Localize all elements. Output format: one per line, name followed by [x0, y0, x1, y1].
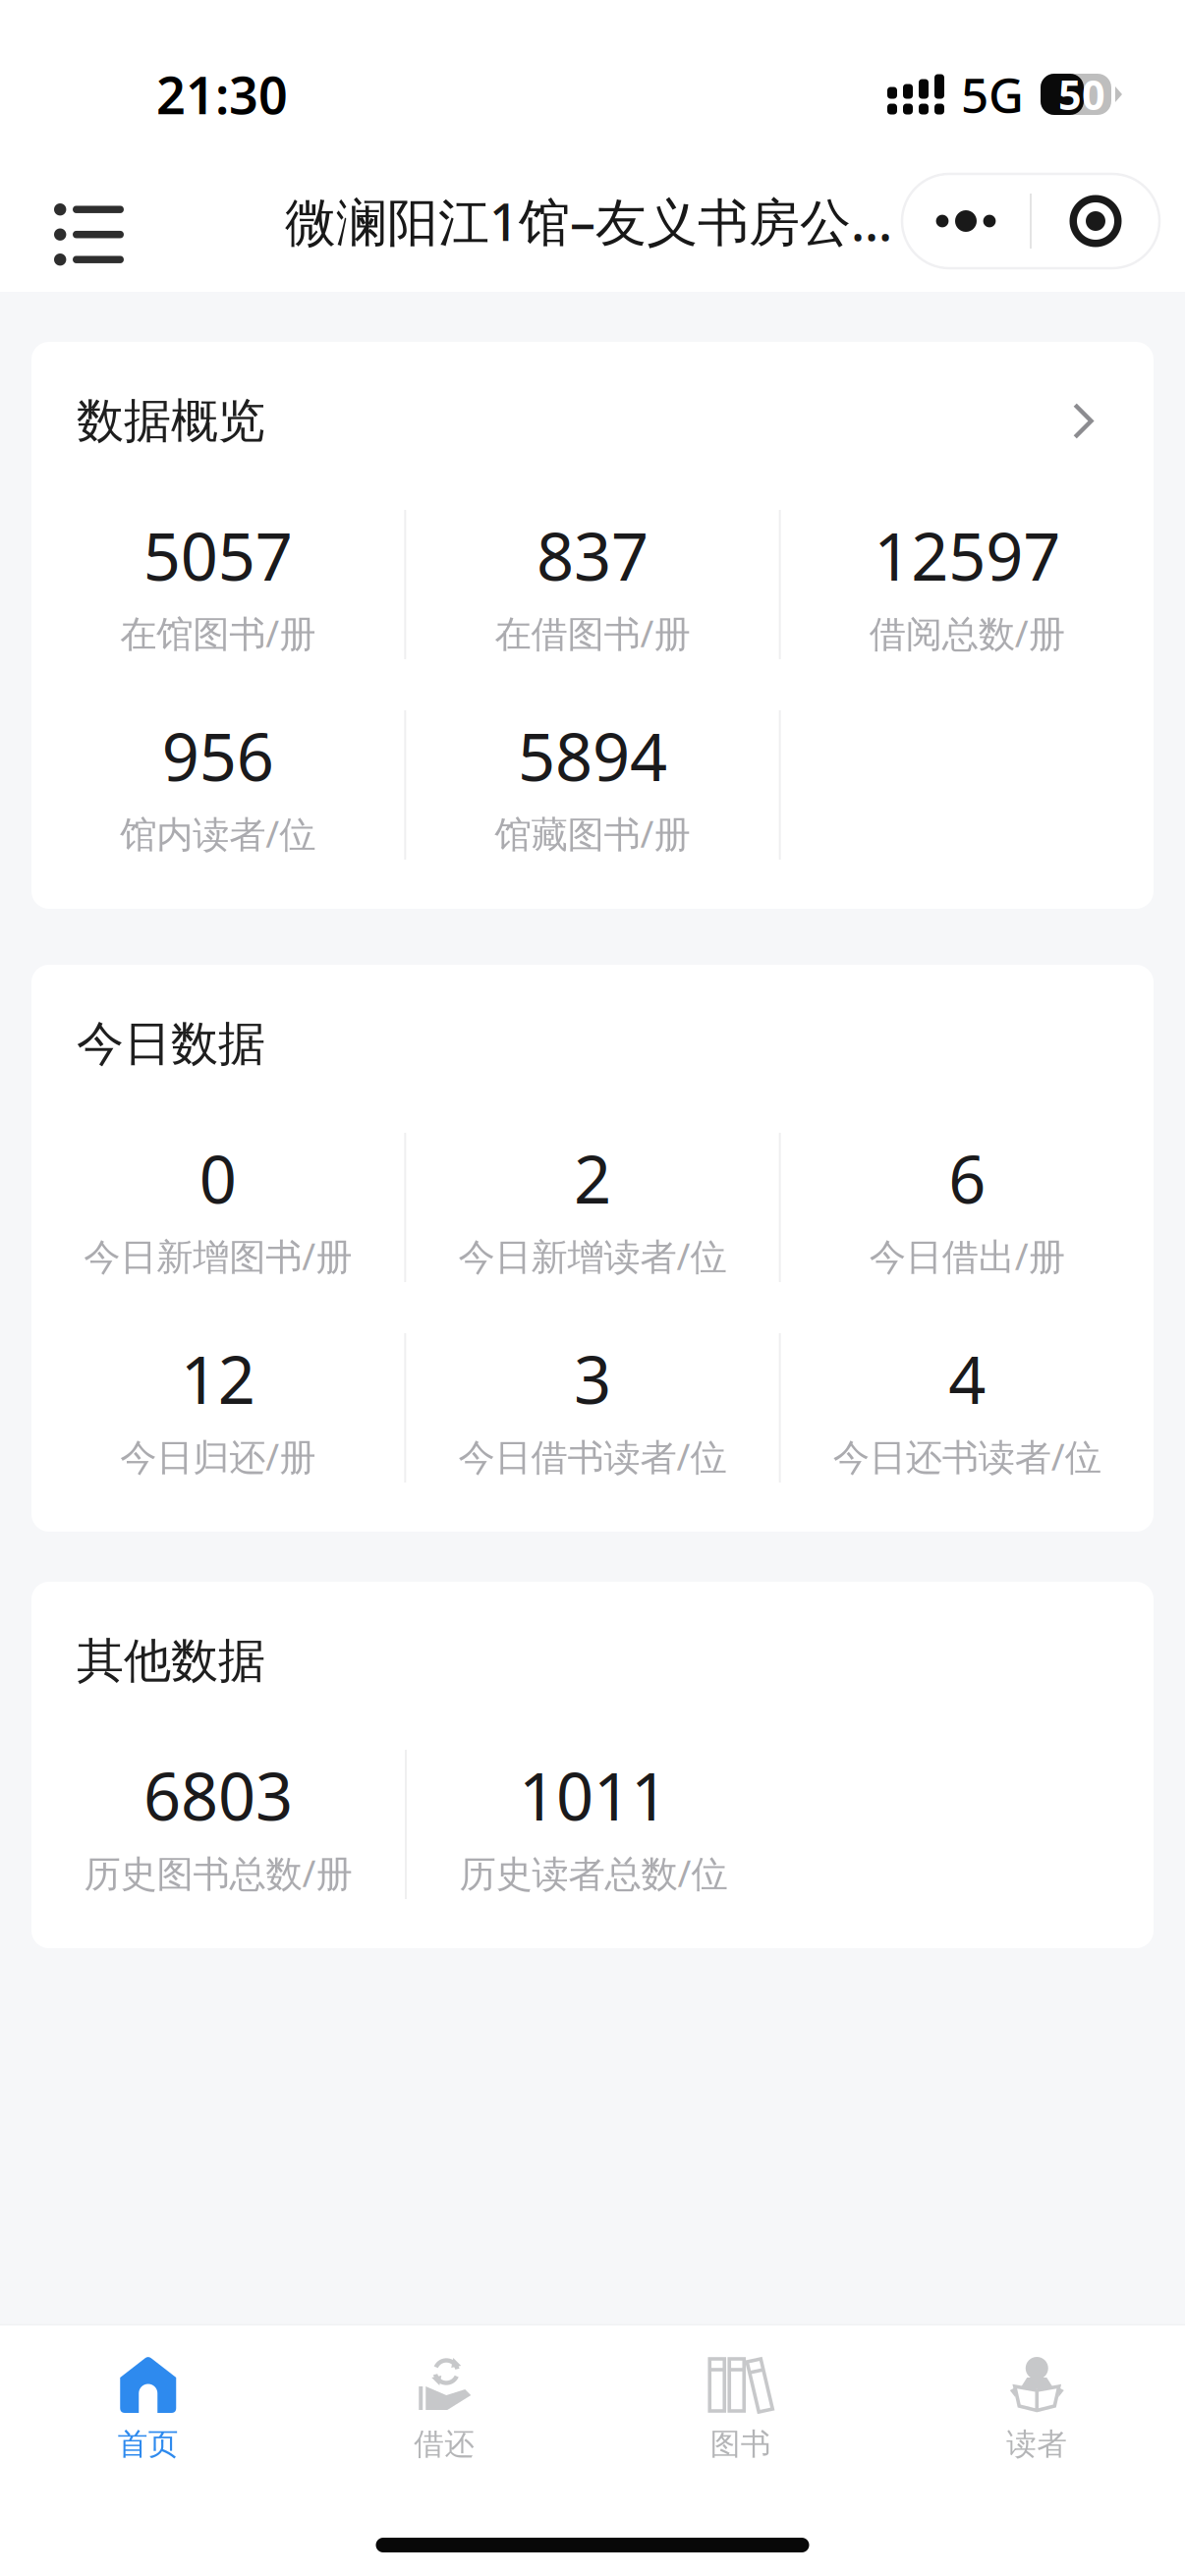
staticText: 借还 [414, 2426, 475, 2463]
staticText: 微澜阳江1馆–友义书房公... [285, 187, 892, 255]
staticText: 956 [162, 712, 274, 799]
staticText: 6 [948, 1135, 986, 1222]
staticText: 馆藏图书/册 [495, 809, 690, 858]
staticText: 今日借出/册 [869, 1232, 1065, 1280]
staticText: 5G [961, 62, 1024, 126]
staticText: 历史图书总数/册 [84, 1848, 352, 1897]
staticText: 借阅总数/册 [869, 609, 1065, 657]
button[interactable]: More options [902, 174, 1030, 268]
button[interactable]: 图书 [592, 2325, 889, 2478]
staticText: 3 [574, 1335, 611, 1422]
button[interactable]: 借还 [296, 2325, 592, 2478]
staticText: 今日新增图书/册 [84, 1232, 352, 1280]
staticText: 馆内读者/位 [120, 809, 316, 858]
button[interactable]: 首页 [0, 2325, 296, 2478]
staticText: 2 [574, 1135, 611, 1222]
staticText: 今日还书读者/位 [833, 1432, 1101, 1481]
staticText: 5894 [518, 712, 667, 799]
button[interactable]: Menu [0, 150, 182, 292]
staticText: 读者 [1006, 2426, 1067, 2463]
staticText: 今日新增读者/位 [458, 1232, 727, 1280]
staticText: 1011 [519, 1752, 668, 1839]
button[interactable]: 读者 [889, 2325, 1185, 2478]
staticText: 50 [1058, 67, 1105, 121]
staticText: 4 [948, 1335, 986, 1422]
staticText: 历史读者总数/位 [459, 1848, 728, 1897]
staticText: 在馆图书/册 [120, 609, 316, 657]
staticText: 5057 [143, 512, 293, 599]
staticText: 数据概览 [77, 392, 265, 450]
staticText: 今日归还/册 [120, 1432, 316, 1481]
staticText: 在借图书/册 [495, 609, 690, 657]
staticText: 今日借书读者/位 [458, 1432, 727, 1481]
staticText: 12597 [874, 512, 1061, 599]
staticText: 图书 [710, 2426, 771, 2463]
staticText: 6803 [143, 1752, 293, 1839]
staticText: 首页 [118, 2426, 179, 2463]
staticText: 0 [199, 1135, 237, 1222]
staticText: 21:30 [156, 60, 288, 128]
staticText: 今日数据 [77, 1015, 265, 1073]
staticText: 12 [181, 1335, 255, 1422]
button[interactable]: Close mini program [1032, 174, 1159, 268]
staticText: 其他数据 [77, 1632, 265, 1690]
staticText: 837 [536, 512, 649, 599]
